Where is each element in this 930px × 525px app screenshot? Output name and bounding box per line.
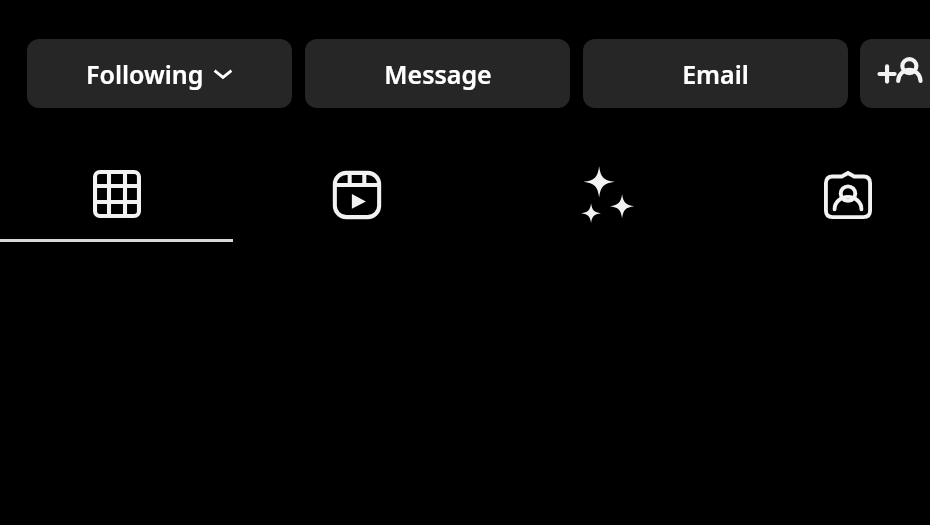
button[interactable]: Add person: [860, 39, 930, 108]
button[interactable]: Following: [27, 39, 292, 108]
button[interactable]: AI: [484, 143, 718, 242]
button[interactable]: Email: [583, 39, 848, 108]
staticText: Following: [86, 57, 204, 91]
staticText: Email: [682, 57, 749, 91]
button[interactable]: Message: [305, 39, 570, 108]
button[interactable]: Tagged: [731, 143, 930, 242]
staticText: Message: [384, 57, 492, 91]
button[interactable]: Posts grid: [0, 143, 233, 242]
button[interactable]: Reels: [240, 143, 474, 242]
